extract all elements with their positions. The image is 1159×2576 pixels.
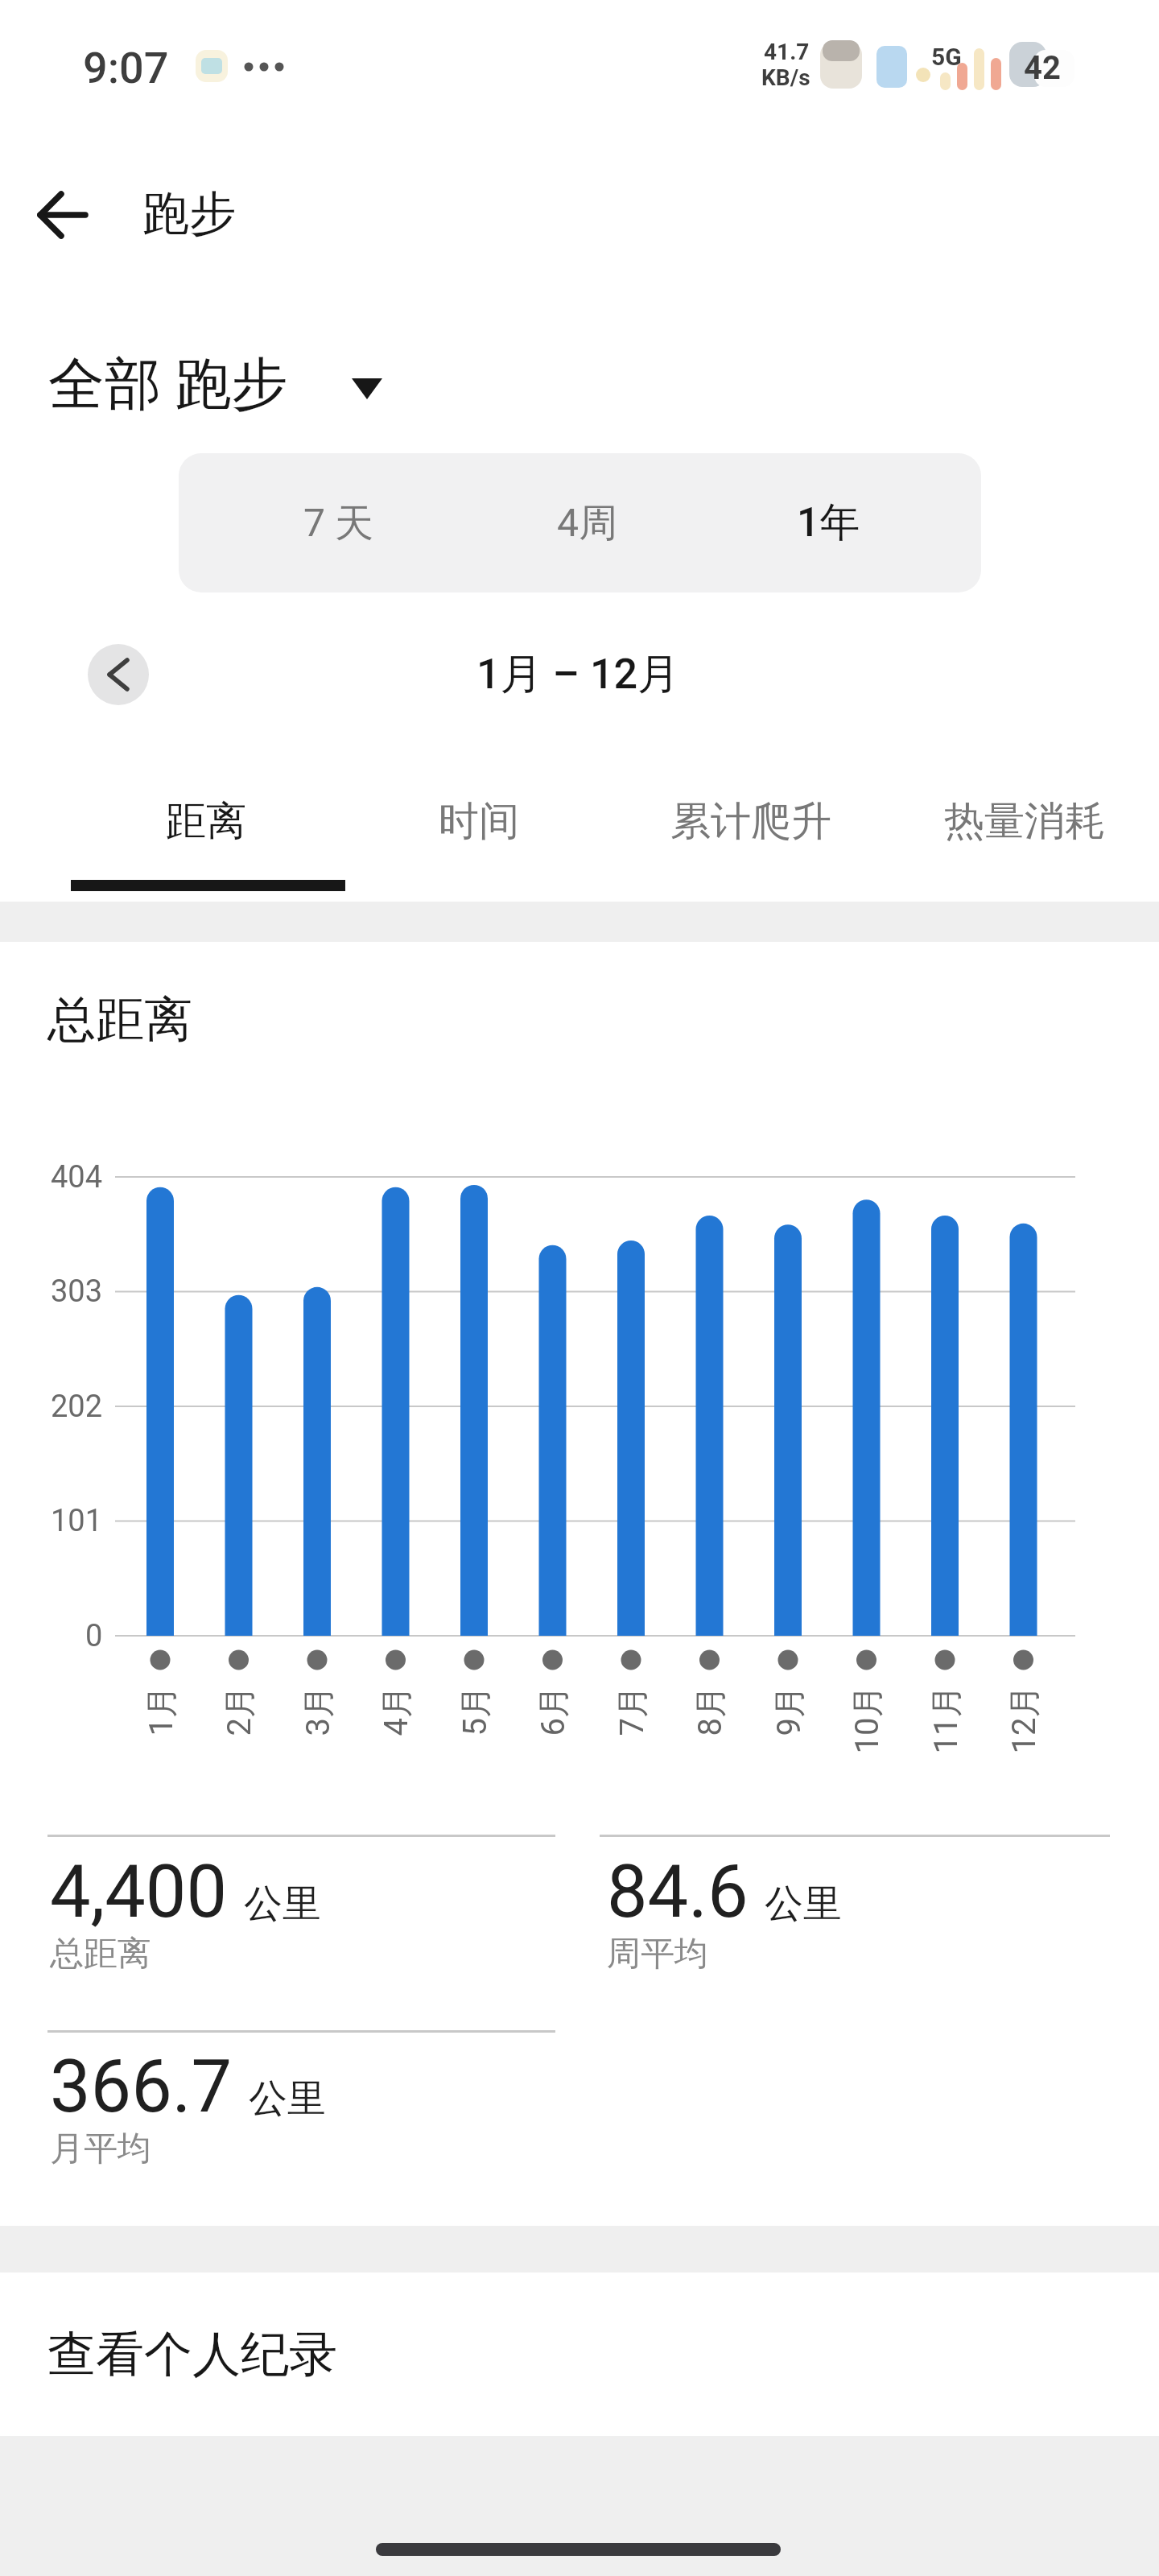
button[interactable]: 累计爬升: [643, 769, 859, 873]
staticText: 查看个人纪录: [47, 2324, 337, 2385]
staticText: 84.6: [607, 1850, 749, 1934]
staticText: 跑步: [142, 184, 236, 243]
staticText: 距离: [166, 796, 246, 847]
staticText: 41.7: [764, 39, 810, 65]
button[interactable]: [24, 176, 101, 253]
staticText: 1年: [797, 497, 860, 548]
staticText: 7月: [611, 1685, 652, 1736]
staticText: 101: [51, 1503, 103, 1539]
staticText: 10月: [846, 1685, 887, 1754]
staticText: 5月: [454, 1685, 495, 1736]
button[interactable]: [40, 338, 410, 435]
staticText: 月平均: [50, 2128, 151, 2170]
staticText: 8月: [689, 1685, 730, 1736]
staticText: 总距离: [50, 1933, 151, 1975]
staticText: 4月: [375, 1685, 416, 1736]
staticText: 6月: [532, 1685, 573, 1736]
staticText: 42: [1024, 49, 1061, 87]
staticText: 9月: [768, 1685, 808, 1736]
staticText: 5G: [931, 43, 962, 71]
staticText: KB/s: [761, 64, 810, 91]
staticText: 366.7: [50, 2045, 233, 2129]
staticText: 4周: [557, 499, 617, 547]
staticText: 11月: [925, 1685, 965, 1754]
staticText: 9:07: [83, 43, 169, 93]
button[interactable]: 时间: [413, 769, 545, 873]
staticText: 周平均: [607, 1933, 708, 1975]
staticText: 1月: [140, 1685, 181, 1736]
button[interactable]: 7 天: [179, 453, 447, 592]
staticText: 7 天: [303, 499, 373, 547]
staticText: 2月: [219, 1685, 259, 1736]
staticText: 12月: [1003, 1685, 1044, 1754]
button[interactable]: 4周: [447, 453, 714, 592]
staticText: 4,400: [50, 1850, 228, 1934]
staticText: 热量消耗: [944, 796, 1105, 847]
button[interactable]: [88, 644, 149, 705]
staticText: 累计爬升: [670, 796, 831, 847]
staticText: 公里: [249, 2074, 326, 2123]
staticText: 404: [51, 1159, 103, 1195]
staticText: 303: [51, 1274, 103, 1310]
button[interactable]: 1年: [714, 453, 981, 592]
staticText: 全部 跑步: [48, 349, 288, 420]
staticText: 总距离: [47, 989, 192, 1051]
staticText: 公里: [765, 1880, 842, 1928]
staticText: 202: [51, 1389, 103, 1425]
staticText: 0: [85, 1618, 103, 1654]
button[interactable]: 热量消耗: [916, 769, 1132, 873]
staticText: 公里: [244, 1880, 321, 1928]
staticText: 3月: [297, 1685, 338, 1736]
button[interactable]: 距离: [139, 769, 272, 873]
button[interactable]: 查看个人纪录: [0, 2273, 1159, 2436]
staticText: 1月 – 12月: [476, 648, 680, 701]
staticText: 时间: [439, 796, 519, 847]
